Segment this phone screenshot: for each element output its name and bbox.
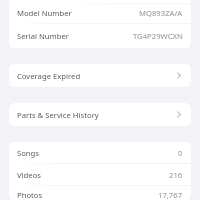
button[interactable]: Photos: [9, 186, 191, 200]
button[interactable]: Model Number: [9, 4, 191, 23]
button[interactable]: Songs: [9, 142, 191, 163]
staticText: 216: [169, 170, 183, 180]
staticText: Serial Number: [17, 31, 70, 41]
button[interactable]: Serial Number: [9, 24, 191, 48]
staticText: Songs: [17, 148, 40, 158]
staticText: Coverage Expired: [17, 71, 81, 81]
staticText: 0: [178, 148, 183, 158]
staticText: Model Number: [17, 8, 72, 18]
staticText: Photos: [17, 190, 43, 200]
staticText: MQ893ZA/A: [139, 8, 183, 18]
staticText: Parts & Service History: [17, 110, 99, 120]
button[interactable]: Videos: [9, 164, 191, 185]
staticText: TG4P29WCXN: [133, 31, 183, 41]
staticText: Videos: [17, 170, 41, 180]
button[interactable]: Parts & Service History: [9, 103, 191, 126]
staticText: 17,767: [158, 190, 183, 200]
button[interactable]: Coverage Expired: [9, 64, 191, 87]
